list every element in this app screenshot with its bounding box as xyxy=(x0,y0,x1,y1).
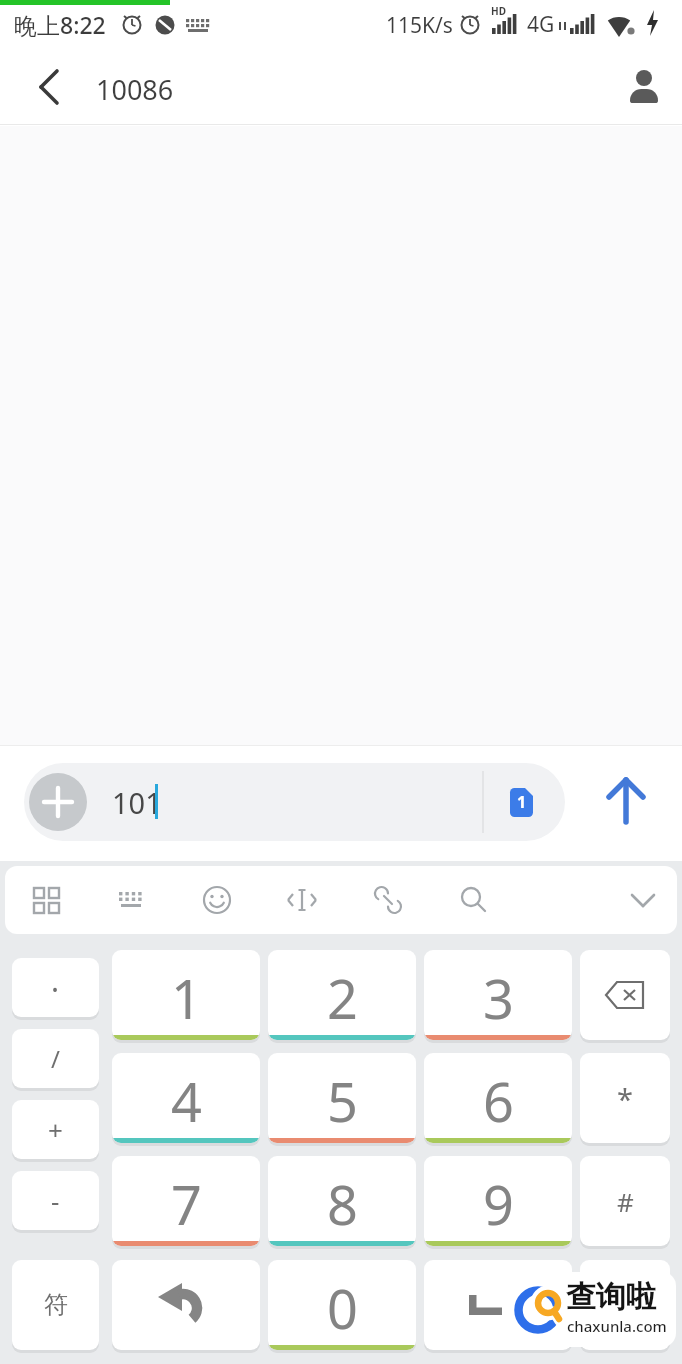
button[interactable]: 0 xyxy=(268,1260,416,1350)
staticText: * xyxy=(617,1079,633,1118)
staticText: 符 xyxy=(44,1290,68,1320)
staticText: 1 xyxy=(517,791,527,813)
button[interactable] xyxy=(618,60,668,112)
button[interactable]: 7 xyxy=(112,1156,260,1246)
button[interactable]: 1 xyxy=(112,950,260,1040)
button[interactable] xyxy=(613,866,673,934)
button[interactable]: # xyxy=(580,1156,670,1246)
staticText: 10086 xyxy=(96,71,174,108)
button[interactable] xyxy=(29,773,87,831)
staticText: 查询啦 xyxy=(566,1278,656,1316)
staticText: 6 xyxy=(483,1064,514,1138)
button[interactable] xyxy=(26,62,70,112)
staticText: - xyxy=(51,1183,60,1218)
staticText: 4 xyxy=(171,1064,202,1138)
staticText: 2 xyxy=(327,961,358,1035)
staticText: HD xyxy=(491,4,506,18)
staticText: 0 xyxy=(327,1271,358,1345)
staticText: 1 xyxy=(171,961,202,1035)
staticText: 晚上8:22 xyxy=(14,9,106,40)
button[interactable]: / xyxy=(12,1029,99,1088)
button[interactable] xyxy=(595,770,657,832)
staticText: 101 xyxy=(112,783,162,822)
button[interactable]: 8 xyxy=(268,1156,416,1246)
staticText: + xyxy=(48,1112,63,1147)
button[interactable] xyxy=(580,950,670,1040)
button[interactable]: 9 xyxy=(424,1156,572,1246)
button[interactable] xyxy=(358,870,418,930)
staticText: 115K/s xyxy=(386,11,453,40)
button[interactable]: 6 xyxy=(424,1053,572,1143)
button[interactable]: 符 xyxy=(12,1260,99,1350)
button[interactable] xyxy=(101,870,161,930)
staticText: 5 xyxy=(327,1064,358,1138)
button[interactable] xyxy=(187,870,247,930)
button[interactable] xyxy=(443,870,503,930)
button[interactable]: + xyxy=(12,1100,99,1159)
button[interactable] xyxy=(272,870,332,930)
button[interactable]: 2 xyxy=(268,950,416,1040)
staticText: . xyxy=(51,960,60,1001)
button[interactable] xyxy=(16,870,76,930)
staticText: chaxunla.com xyxy=(567,1316,667,1336)
button[interactable]: 3 xyxy=(424,950,572,1040)
button[interactable]: . xyxy=(12,958,99,1017)
button[interactable]: - xyxy=(12,1171,99,1230)
button[interactable] xyxy=(424,1260,572,1350)
staticText: 3 xyxy=(483,961,514,1035)
staticText: 9 xyxy=(483,1167,514,1241)
staticText: 7 xyxy=(171,1167,202,1241)
button[interactable]: * xyxy=(580,1053,670,1143)
staticText: / xyxy=(51,1042,60,1075)
button[interactable]: 4 xyxy=(112,1053,260,1143)
staticText: ↵ xyxy=(614,1290,636,1320)
button[interactable] xyxy=(112,1260,260,1350)
button[interactable]: 101 xyxy=(24,763,565,841)
button[interactable]: 5 xyxy=(268,1053,416,1143)
button[interactable]: ↵ xyxy=(580,1260,670,1350)
staticText: # xyxy=(617,1184,634,1219)
staticText: 8 xyxy=(327,1167,358,1241)
staticText: 4G xyxy=(527,10,555,39)
